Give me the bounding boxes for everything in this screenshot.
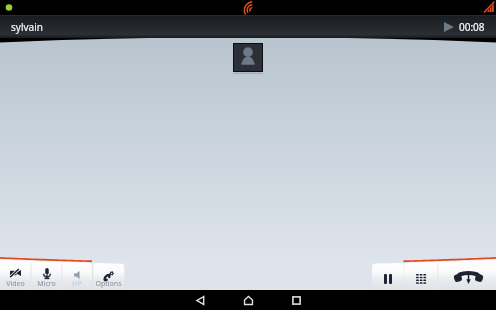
- staticText: Micro: [31, 279, 62, 289]
- button[interactable]: Back: [183, 290, 217, 310]
- button[interactable]: Pause: [384, 274, 392, 284]
- button[interactable]: Recents: [279, 290, 313, 310]
- staticText: sylvain: [11, 20, 43, 34]
- button[interactable]: Home: [231, 290, 265, 310]
- button[interactable]: Options: [93, 264, 124, 290]
- staticText: Options: [93, 279, 124, 289]
- staticText: Video: [0, 279, 31, 289]
- button[interactable]: Video: [0, 264, 31, 290]
- staticText: HP: [62, 279, 92, 289]
- button[interactable]: Micro: [31, 264, 62, 290]
- button[interactable]: End call: [454, 269, 483, 284]
- button[interactable]: Dialpad: [416, 274, 427, 285]
- button[interactable]: HP: [62, 264, 92, 290]
- staticText: 00:08: [459, 20, 485, 34]
